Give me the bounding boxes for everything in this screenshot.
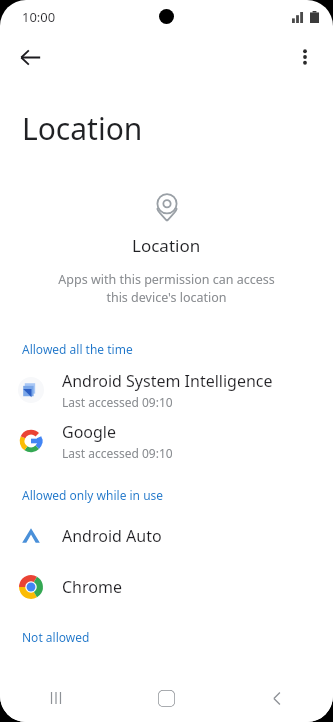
staticText: Not allowed <box>22 629 90 645</box>
staticText: Chrome <box>62 576 122 598</box>
staticText: 10:00 <box>22 8 56 26</box>
staticText: Google <box>62 421 117 443</box>
button[interactable]: More options <box>285 37 325 77</box>
staticText: Android Auto <box>62 525 162 547</box>
button[interactable]: Android Auto <box>0 510 333 561</box>
button[interactable]: Google <box>0 415 333 466</box>
button[interactable]: Recent apps <box>0 674 111 722</box>
button[interactable]: Back <box>222 674 333 722</box>
button[interactable]: Chrome <box>0 561 333 612</box>
staticText: Last accessed 09:10 <box>62 394 173 410</box>
staticText: Allowed only while in use <box>22 487 164 503</box>
staticText: Location <box>22 108 143 149</box>
button[interactable]: Android System Intelligence <box>0 364 333 415</box>
button[interactable]: Home <box>111 674 222 722</box>
button[interactable]: Back <box>10 37 50 77</box>
staticText: Location <box>132 234 201 257</box>
staticText: Allowed all the time <box>22 341 133 357</box>
staticText: Apps with this permission can access thi… <box>48 271 285 306</box>
staticText: Android System Intelligence <box>62 370 273 392</box>
staticText: Last accessed 09:10 <box>62 445 173 461</box>
